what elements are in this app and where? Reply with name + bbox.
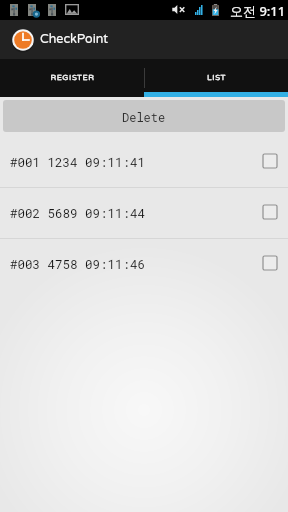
staticText: #003 4758 09:11:46 [10, 256, 146, 272]
staticText: LIST [207, 73, 226, 83]
staticText: #001 1234 09:11:41 [10, 154, 146, 170]
button[interactable]: Select item [263, 205, 277, 219]
button[interactable]: Select item [263, 256, 277, 270]
button[interactable]: #003 4758 09:11:46 [0, 239, 288, 289]
staticText: REGISTER [50, 73, 95, 83]
staticText: Delete [122, 109, 166, 125]
staticText: 오전 9:11 [230, 2, 286, 20]
button[interactable]: REGISTER [0, 59, 144, 97]
button[interactable]: #001 1234 09:11:41 [0, 137, 288, 187]
other: App icon [12, 29, 34, 51]
button[interactable]: #002 5689 09:11:44 [0, 188, 288, 238]
staticText: #002 5689 09:11:44 [10, 205, 146, 221]
button[interactable]: Delete [3, 100, 285, 132]
button[interactable]: LIST [144, 59, 288, 97]
button[interactable]: Select item [263, 154, 277, 168]
staticText: CheckPoint [40, 32, 109, 47]
